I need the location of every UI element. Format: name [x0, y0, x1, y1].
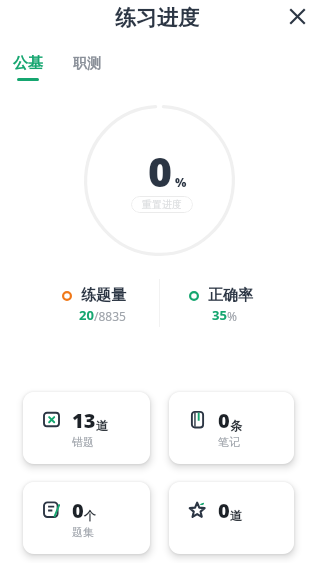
- staticText: 道: [96, 418, 108, 433]
- staticText: %: [175, 174, 187, 190]
- staticText: 条: [230, 418, 242, 433]
- staticText: 13: [72, 407, 96, 434]
- button[interactable]: 重置进度: [131, 196, 193, 213]
- staticText: 题集: [72, 525, 94, 539]
- staticText: 笔记: [218, 435, 240, 449]
- button[interactable]: 练题量: [62, 286, 126, 324]
- button[interactable]: 0: [169, 482, 294, 554]
- staticText: 重置进度: [142, 198, 182, 211]
- staticText: 20: [79, 306, 94, 324]
- staticText: 0: [72, 497, 84, 524]
- staticText: 练习进度: [115, 5, 199, 31]
- button[interactable]: 公基: [9, 50, 47, 77]
- staticText: 正确率: [208, 286, 253, 305]
- button[interactable]: 13: [23, 392, 150, 464]
- staticText: 个: [84, 508, 96, 523]
- staticText: 35: [212, 306, 227, 324]
- button[interactable]: 职测: [69, 51, 105, 77]
- button[interactable]: 正确率: [189, 286, 253, 324]
- button[interactable]: Close: [281, 0, 313, 32]
- staticText: 0: [148, 143, 173, 199]
- staticText: 0: [218, 407, 230, 434]
- staticText: 道: [230, 508, 242, 523]
- staticText: 练题量: [81, 286, 126, 305]
- staticText: /8835: [94, 308, 126, 324]
- button[interactable]: 0: [23, 482, 150, 554]
- staticText: 公基: [13, 54, 43, 73]
- staticText: 0: [218, 497, 230, 524]
- staticText: 错题: [72, 435, 94, 449]
- staticText: 职测: [73, 55, 101, 73]
- button[interactable]: 0: [169, 392, 294, 464]
- staticText: %: [227, 308, 237, 324]
